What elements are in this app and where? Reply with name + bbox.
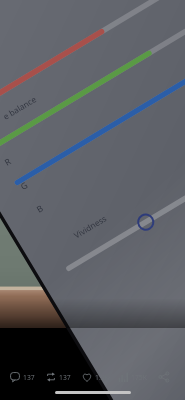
staticText: Vividness <box>72 212 108 240</box>
staticText: B <box>34 202 46 216</box>
button[interactable]: Photo <box>0 80 185 328</box>
button[interactable]: More options <box>160 17 180 37</box>
button[interactable]: Repost <box>46 366 82 388</box>
staticText: 137 <box>59 373 71 382</box>
staticText: 1.9K <box>95 373 109 382</box>
staticText: e balance <box>1 93 38 122</box>
staticText: R <box>2 155 14 169</box>
button[interactable]: Like <box>82 366 118 388</box>
button[interactable]: Reply <box>10 366 46 388</box>
staticText: G <box>18 179 31 193</box>
staticText: 137 <box>23 373 35 382</box>
